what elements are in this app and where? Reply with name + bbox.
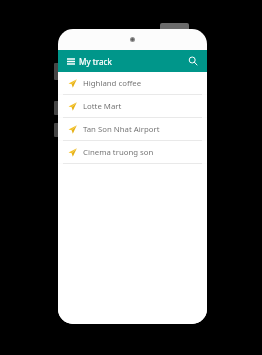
button[interactable]: Highland coffee [58,72,207,94]
staticText: Lotte Mart [83,101,199,112]
button[interactable]: Lotte Mart [58,95,207,117]
staticText: Tan Son Nhat Airport [83,124,199,135]
button[interactable]: Open navigation menu [64,52,77,70]
button[interactable]: Search [185,51,201,71]
staticText: Cinema truong son [83,147,199,158]
button[interactable]: Cinema truong son [58,141,207,163]
staticText: My track [79,56,185,67]
button[interactable]: Tan Son Nhat Airport [58,118,207,140]
staticText: Highland coffee [83,78,199,89]
